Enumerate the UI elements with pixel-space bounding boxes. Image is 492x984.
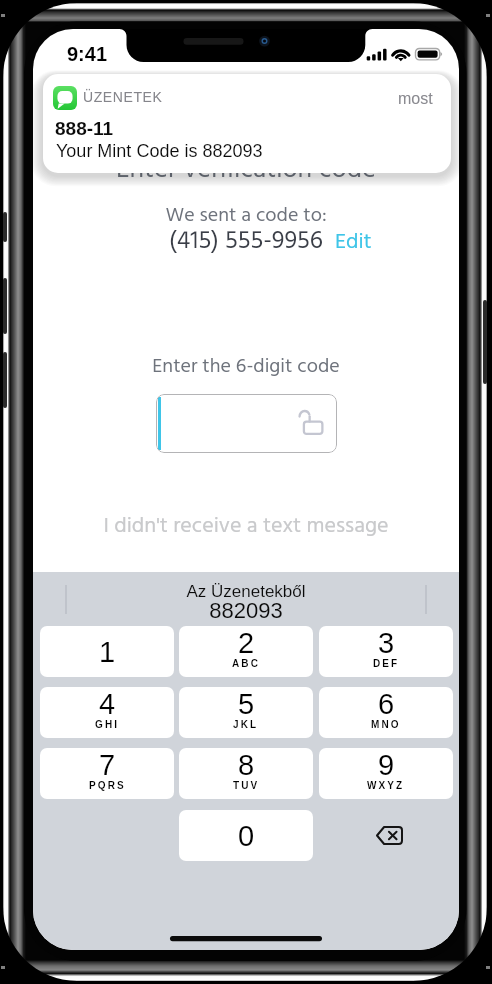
button[interactable]: Delete bbox=[363, 819, 415, 851]
staticText: (415) 555-9956 bbox=[33, 222, 459, 262]
staticText: MNO bbox=[371, 719, 401, 730]
button[interactable]: I didn't receive a text message bbox=[33, 509, 459, 543]
staticText: Your Mint Code is 882093 bbox=[56, 141, 263, 161]
staticText: Enter the 6-digit code bbox=[33, 351, 459, 383]
staticText: most bbox=[398, 90, 433, 108]
button[interactable]: 7 bbox=[40, 748, 174, 799]
button[interactable]: Edit bbox=[335, 225, 372, 255]
staticText: 6 bbox=[378, 688, 395, 720]
staticText: I didn't receive a text message bbox=[33, 509, 459, 543]
button[interactable]: ÜZENETEK bbox=[43, 74, 451, 173]
staticText: 4 bbox=[99, 688, 116, 720]
button[interactable]: 9 bbox=[319, 748, 453, 799]
staticText: 1 bbox=[99, 636, 116, 668]
staticText: Edit bbox=[335, 225, 372, 255]
button[interactable]: 1 bbox=[40, 626, 174, 677]
staticText: 882093 bbox=[33, 598, 459, 623]
button[interactable]: 3 bbox=[319, 626, 453, 677]
button[interactable]: 2 bbox=[179, 626, 313, 677]
button[interactable]: 8 bbox=[179, 748, 313, 799]
staticText: 7 bbox=[99, 749, 116, 781]
staticText: WXYZ bbox=[367, 780, 405, 791]
staticText: 3 bbox=[378, 627, 395, 659]
staticText: 888-11 bbox=[55, 118, 114, 139]
staticText: We sent a code to: bbox=[33, 200, 459, 232]
staticText: TUV bbox=[233, 780, 260, 791]
staticText: Enter verification code bbox=[33, 149, 459, 192]
staticText: Az Üzenetekből bbox=[33, 582, 459, 601]
staticText: 0 bbox=[238, 820, 255, 852]
staticText: DEF bbox=[373, 658, 400, 669]
staticText: 2 bbox=[238, 627, 255, 659]
button[interactable]: 4 bbox=[40, 687, 174, 738]
staticText: GHI bbox=[95, 719, 120, 730]
staticText: ABC bbox=[232, 658, 260, 669]
staticText: PQRS bbox=[89, 780, 126, 791]
button[interactable]: 0 bbox=[179, 810, 313, 861]
staticText: 8 bbox=[238, 749, 255, 781]
staticText: JKL bbox=[233, 719, 259, 730]
button[interactable]: 5 bbox=[179, 687, 313, 738]
button[interactable]: 6 bbox=[319, 687, 453, 738]
staticText: 9 bbox=[378, 749, 395, 781]
staticText: 5 bbox=[238, 688, 255, 720]
button[interactable] bbox=[156, 394, 337, 453]
staticText: ÜZENETEK bbox=[83, 89, 163, 105]
staticText: 9:41 bbox=[67, 43, 108, 65]
